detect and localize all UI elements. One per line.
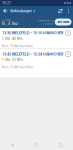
button[interactable]: Home: [24, 140, 49, 150]
button[interactable]: Back: [0, 140, 24, 150]
button[interactable]: 13:42 BIELEFELD – 15:34 HANNOVER: [0, 49, 73, 78]
staticText: Jetzt buchen: [57, 20, 69, 23]
staticText: 13:30 BIELEFELD – 15:10 HANNOVER: [2, 31, 63, 35]
button[interactable]: Reverse journey: [56, 6, 65, 16]
staticText: 15:21: [2, 1, 11, 5]
button[interactable]: 13:30 BIELEFELD – 15:10 HANNOVER: [0, 28, 73, 48]
staticText: Gesamtpreis ab: [38, 19, 54, 22]
staticText: Hinfahrt: [2, 18, 11, 21]
staticText: 1 Reisende*r: [41, 22, 54, 25]
staticText: 1 Std. 52 Min.: [2, 58, 24, 61]
staticText: Di., 3. Dez.: [2, 22, 19, 26]
staticText: 13:42 BIELEFELD – 15:34 HANNOVER: [2, 52, 63, 56]
button[interactable]: Recent apps: [49, 140, 73, 150]
staticText: Verbindungen: [10, 9, 32, 13]
staticText: Kein Ticket buchbar: [2, 65, 33, 69]
staticText: Kein Ticket buchbar: [2, 44, 33, 48]
button[interactable]: Back: [1, 6, 10, 16]
button[interactable]: Jetzt buchen: [55, 18, 71, 25]
staticText: 1 Std. 40 Min.: [2, 37, 24, 40]
button[interactable]: More options: [65, 6, 72, 16]
button[interactable]: Verbindungen: [10, 6, 35, 16]
